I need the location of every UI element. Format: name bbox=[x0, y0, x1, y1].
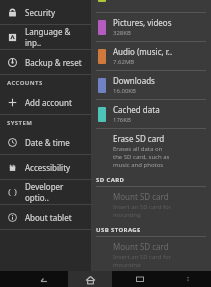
button[interactable]: Add account bbox=[0, 90, 91, 114]
button[interactable]: Date & time bbox=[0, 130, 91, 154]
button[interactable]: Security bbox=[0, 0, 91, 24]
staticText: About tablet bbox=[25, 212, 72, 223]
button[interactable]: Home bbox=[68, 271, 112, 287]
staticText: Security bbox=[25, 7, 56, 18]
button[interactable]: Accessibility bbox=[0, 155, 91, 179]
button[interactable]: Developer optio.. bbox=[0, 180, 91, 204]
staticText: Insert an SD card for mounting bbox=[113, 203, 172, 219]
staticText: 176KB bbox=[113, 116, 131, 124]
staticText: Insert an SD card for mounting bbox=[113, 253, 172, 267]
button[interactable]: Language & inp.. bbox=[0, 25, 91, 49]
staticText: Date & time bbox=[25, 137, 70, 148]
staticText: Mount SD card bbox=[113, 191, 169, 202]
staticText: Language & inp.. bbox=[25, 26, 87, 48]
button[interactable]: Audio (music, r.. bbox=[91, 42, 211, 70]
staticText: Backup & reset bbox=[25, 57, 82, 68]
button[interactable]: Menu bbox=[178, 271, 198, 287]
staticText: Accessibility bbox=[25, 162, 71, 173]
staticText: ACCOUNTS bbox=[7, 79, 43, 87]
staticText: Erase SD card bbox=[113, 133, 165, 144]
button[interactable]: Downloads bbox=[91, 71, 211, 99]
button[interactable]: Cached data bbox=[91, 100, 211, 128]
staticText: SYSTEM bbox=[7, 119, 33, 127]
staticText: Downloads bbox=[113, 75, 155, 86]
button[interactable]: Backup & reset bbox=[0, 50, 91, 74]
button[interactable]: About tablet bbox=[0, 205, 91, 229]
staticText: 7.62MB bbox=[113, 58, 135, 66]
staticText: 328KB bbox=[113, 29, 131, 37]
staticText: Add account bbox=[25, 97, 72, 108]
staticText: 16.00KB bbox=[113, 87, 136, 95]
button[interactable]: Recents bbox=[126, 271, 154, 287]
staticText: USB STORAGE bbox=[96, 226, 141, 234]
staticText: SD CARD bbox=[96, 176, 125, 184]
button[interactable]: Pictures, videos bbox=[91, 13, 211, 41]
button[interactable]: Erase SD card bbox=[91, 129, 211, 173]
staticText: Mount SD card bbox=[113, 241, 169, 252]
staticText: Pictures, videos bbox=[113, 17, 172, 28]
staticText: Erases all data on the SD card, such as … bbox=[113, 145, 170, 169]
staticText: Cached data bbox=[113, 104, 160, 115]
staticText: Developer optio.. bbox=[25, 181, 87, 203]
button[interactable]: Misc. bbox=[91, 0, 211, 2]
staticText: Audio (music, r.. bbox=[113, 46, 173, 57]
button[interactable]: Back bbox=[30, 271, 58, 287]
